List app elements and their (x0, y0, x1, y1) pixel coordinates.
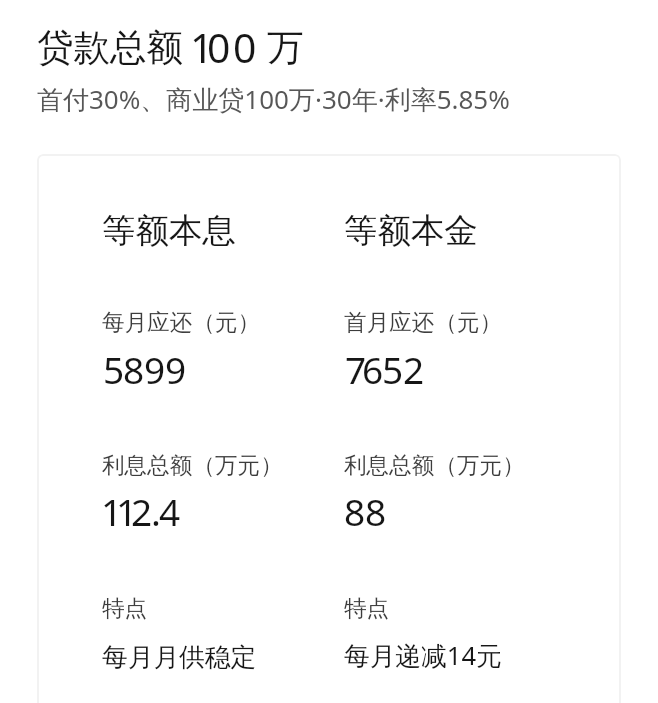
staticText: 利息总额（万元） (102, 451, 283, 479)
button[interactable] (37, 154, 621, 703)
staticText: 2 (131, 486, 153, 536)
staticText: 贷款总额 (37, 25, 183, 71)
staticText: 1 (101, 486, 123, 536)
staticText: 2 (403, 344, 425, 394)
staticText: 0 (207, 19, 231, 75)
staticText: 等额本金 (344, 210, 478, 252)
staticText: 1 (190, 19, 214, 75)
staticText: 每月递减14元 (344, 638, 502, 673)
staticText: 等额本息 (102, 210, 236, 252)
staticText: 4 (159, 486, 181, 536)
staticText: 5 (103, 344, 125, 394)
staticText: . (151, 486, 161, 536)
staticText: 每月月供稳定 (102, 641, 257, 673)
staticText: 万 (267, 25, 304, 71)
staticText: 特点 (344, 594, 390, 622)
staticText: 8 (365, 486, 387, 536)
staticText: 6 (362, 344, 384, 394)
staticText: 8 (344, 486, 366, 536)
staticText: 利息总额（万元） (344, 451, 525, 479)
staticText: 8 (123, 344, 145, 394)
staticText: 9 (144, 344, 166, 394)
staticText: 7 (345, 344, 367, 394)
staticText: 首付30%、商业贷100万·30年·利率5.85% (37, 81, 510, 117)
staticText: 特点 (102, 594, 148, 622)
staticText: 0 (233, 19, 257, 75)
staticText: 1 (116, 486, 138, 536)
staticText: 5 (382, 344, 404, 394)
staticText: 9 (165, 344, 187, 394)
staticText: 首月应还（元） (344, 308, 503, 336)
staticText: 每月应还（元） (102, 308, 261, 336)
